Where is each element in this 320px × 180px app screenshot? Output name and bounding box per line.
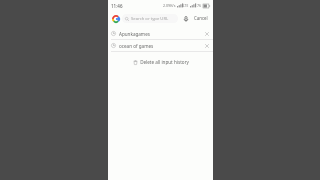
button[interactable]: Cancel	[192, 13, 210, 23]
staticText: LTE	[183, 4, 189, 8]
staticText: ocean of games	[119, 43, 154, 49]
staticText: 2.09K/s	[163, 3, 176, 8]
staticText: Apunkagames	[119, 31, 150, 37]
button[interactable]: ocean of games	[108, 40, 213, 51]
button[interactable]: Delete all input history	[129, 56, 193, 68]
staticText: Search or type URL	[131, 16, 169, 22]
button[interactable]: Remove ocean of games	[203, 42, 210, 49]
staticText: 76	[197, 3, 202, 8]
button[interactable]: Remove Apunkagames	[203, 30, 210, 37]
button[interactable]: Search or type URL	[122, 14, 178, 23]
button[interactable]: Voice search	[181, 14, 190, 23]
button[interactable]: Google	[111, 14, 120, 23]
staticText: 11:46	[111, 3, 123, 9]
button[interactable]: Apunkagames	[108, 28, 213, 39]
staticText: Delete all input history	[140, 59, 189, 65]
staticText: Cancel	[194, 15, 208, 21]
